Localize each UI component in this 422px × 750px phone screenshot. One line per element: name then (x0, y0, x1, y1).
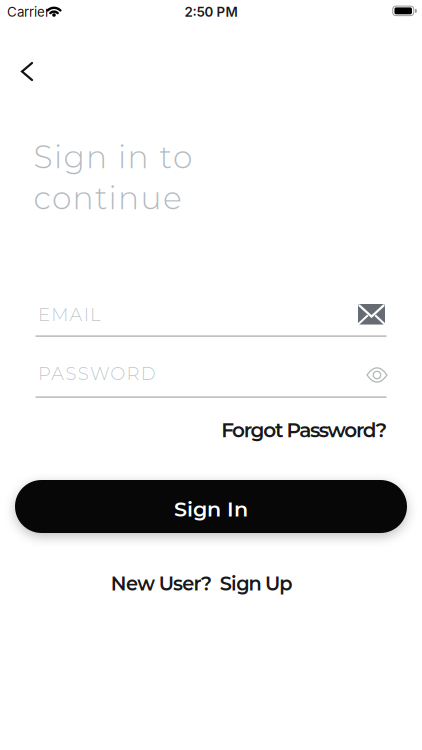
staticText: Carrier (7, 4, 50, 20)
staticText: PASSWORD (38, 362, 156, 384)
staticText: 2:50 PM (184, 4, 237, 20)
button[interactable]: Sign In (15, 480, 407, 533)
staticText: continue (33, 179, 182, 217)
staticText: Sign in to (33, 138, 192, 176)
staticText: New User? (111, 572, 212, 595)
button[interactable]: Back (0, 54, 48, 89)
button[interactable]: PASSWORD (35, 361, 386, 401)
staticText: EMAIL (38, 304, 101, 326)
button[interactable]: EMAIL (35, 300, 386, 340)
button[interactable]: Forgot Password? (221, 418, 387, 442)
staticText: Forgot Password? (221, 418, 387, 442)
staticText: Sign Up (220, 572, 292, 595)
button[interactable]: Sign Up (220, 572, 292, 595)
staticText: Sign In (174, 496, 248, 522)
button[interactable]: Show Password (363, 363, 391, 387)
